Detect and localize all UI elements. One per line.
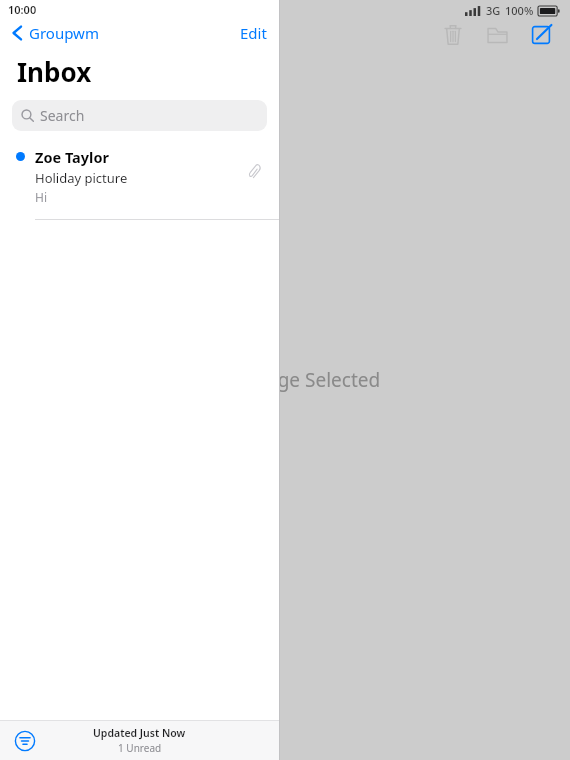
button[interactable]: Filter: [10, 726, 40, 756]
button[interactable]: Groupwm: [12, 23, 99, 43]
button[interactable]: Zoe Taylor: [0, 144, 279, 206]
staticText: Edit: [240, 23, 267, 43]
staticText: 10:00: [8, 2, 37, 17]
button[interactable]: Edit: [228, 19, 279, 47]
button[interactable]: Move to folder: [480, 18, 514, 52]
staticText: Inbox: [17, 54, 92, 89]
staticText: Zoe Taylor: [35, 147, 109, 167]
staticText: Hi: [35, 189, 47, 205]
button[interactable]: Search: [12, 100, 267, 131]
staticText: No Message Selected: [190, 367, 381, 393]
staticText: Updated Just Now: [93, 726, 186, 740]
button[interactable]: Compose: [524, 18, 558, 52]
staticText: 1 Unread: [118, 741, 162, 755]
staticText: Groupwm: [29, 23, 99, 43]
button[interactable]: Delete: [436, 18, 470, 52]
staticText: 3G: [486, 3, 501, 18]
staticText: 100%: [505, 3, 534, 18]
staticText: Holiday picture: [35, 169, 128, 187]
staticText: Search: [40, 106, 85, 125]
